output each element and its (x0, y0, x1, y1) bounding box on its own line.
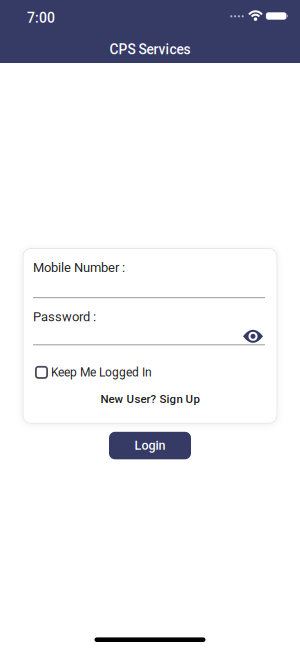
staticText: 7:00 (27, 10, 55, 26)
staticText: Mobile Number : (33, 260, 125, 275)
staticText: Keep Me Logged In (51, 365, 152, 379)
staticText: Login (134, 438, 165, 453)
staticText: New User? Sign Up (100, 392, 199, 406)
button[interactable]: Login (109, 432, 191, 459)
button[interactable]: Keep Me Logged In (33, 365, 152, 379)
staticText: Password : (33, 309, 96, 324)
button[interactable]: Show Password (243, 329, 263, 343)
staticText: CPS Services (109, 41, 190, 58)
button[interactable]: New User? Sign Up (100, 392, 199, 406)
